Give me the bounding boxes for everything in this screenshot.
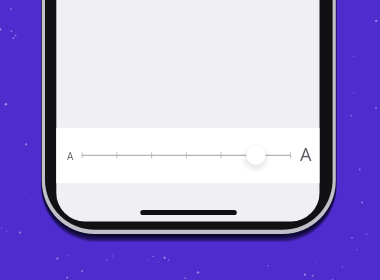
staticText: A [67,149,74,163]
button[interactable]: Increase text size [296,142,315,167]
button[interactable]: Text size slider [78,140,294,171]
button[interactable]: Decrease text size [61,146,79,165]
staticText: A [300,142,312,167]
